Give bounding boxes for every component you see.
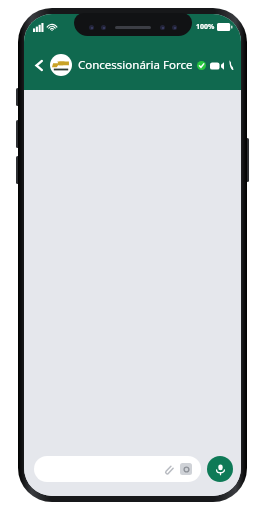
other: Verified business [197, 61, 206, 70]
button[interactable]: Contact photo [50, 54, 72, 76]
staticText: Concessionária Force [78, 57, 193, 73]
button[interactable]: Attach [162, 463, 175, 476]
button[interactable]: Video call [206, 55, 227, 76]
staticText: 100% [196, 22, 215, 32]
staticText: 9:11 AM [110, 21, 143, 33]
button[interactable]: Back [29, 55, 49, 75]
button[interactable]: Attach [34, 456, 201, 482]
button[interactable]: Camera [180, 463, 192, 475]
button[interactable]: Record voice message [207, 456, 233, 482]
button[interactable]: Voice call [229, 55, 234, 75]
